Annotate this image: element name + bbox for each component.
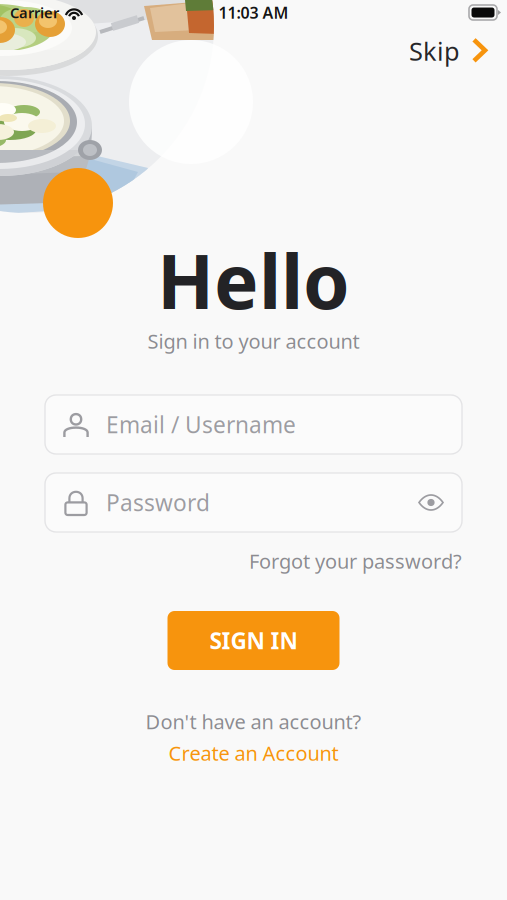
staticText: SIGN IN [209, 625, 297, 655]
staticText: Forgot your password? [249, 548, 462, 574]
staticText: Don't have an account? [145, 708, 361, 735]
button[interactable]: SIGN IN [167, 611, 339, 670]
staticText: Carrier [10, 3, 59, 22]
staticText: 11:03 AM [218, 2, 288, 23]
staticText: Email / Username [106, 409, 296, 439]
staticText: Skip [409, 34, 460, 68]
button[interactable]: Create an Account [168, 733, 338, 773]
button[interactable]: Skip [399, 28, 500, 74]
staticText: Sign in to your account [147, 328, 359, 354]
staticText: Create an Account [168, 740, 338, 766]
staticText: Password [106, 487, 210, 517]
button[interactable]: Forgot your password? [249, 541, 462, 581]
button[interactable]: Show password [418, 492, 444, 512]
staticText: Hello [157, 230, 350, 330]
